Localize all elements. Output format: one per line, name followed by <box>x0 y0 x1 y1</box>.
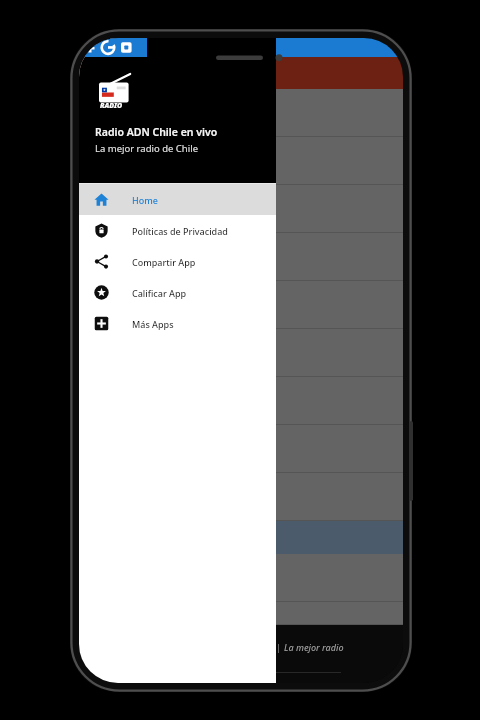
button[interactable] <box>79 137 403 185</box>
staticText: D | <box>267 641 284 653</box>
button[interactable]: Compartir App <box>79 246 276 277</box>
button[interactable]: Calificar App <box>79 277 276 308</box>
staticText: La mejor radio <box>284 641 344 653</box>
button[interactable] <box>79 425 403 473</box>
button[interactable] <box>79 281 403 329</box>
button[interactable]: Políticas de Privacidad <box>79 215 276 246</box>
button[interactable] <box>79 329 403 377</box>
button[interactable] <box>79 473 403 521</box>
button[interactable] <box>79 233 403 281</box>
button[interactable] <box>79 89 403 137</box>
button[interactable] <box>79 602 403 625</box>
button[interactable] <box>79 521 403 554</box>
button[interactable] <box>79 554 403 602</box>
button[interactable] <box>79 377 403 425</box>
button[interactable]: Home <box>79 184 276 215</box>
button[interactable]: Más Apps <box>79 308 276 339</box>
staticText: RADIO <box>100 101 123 111</box>
staticText: Home <box>132 194 158 206</box>
staticText: Radio ADN Chile en vivo <box>95 125 218 139</box>
staticText: Compartir App <box>132 256 196 268</box>
staticText: La mejor radio de Chile <box>95 142 198 155</box>
button[interactable] <box>79 185 403 233</box>
staticText: Políticas de Privacidad <box>132 225 228 237</box>
staticText: Más Apps <box>132 318 174 330</box>
staticText: Calificar App <box>132 287 187 299</box>
